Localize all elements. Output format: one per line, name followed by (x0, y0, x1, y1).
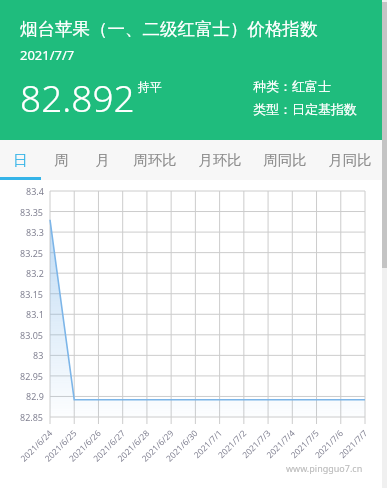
staticText: 2021/7/7 (20, 46, 75, 64)
staticText: 月环比 (198, 151, 242, 169)
staticText: 月 (95, 151, 110, 169)
staticText: 种类：红富士 (253, 78, 331, 94)
button[interactable]: 日 (0, 140, 41, 180)
button[interactable]: 月环比 (187, 140, 252, 180)
button[interactable]: 月同比 (317, 140, 382, 180)
staticText: 周同比 (263, 151, 307, 169)
staticText: 日 (13, 151, 28, 169)
staticText: 烟台苹果（一、二级红富士）价格指数 (20, 18, 318, 40)
button[interactable]: 周同比 (252, 140, 317, 180)
staticText: 月同比 (328, 151, 372, 169)
button[interactable]: 月 (82, 140, 122, 180)
staticText: 周 (54, 151, 69, 169)
staticText: 周环比 (133, 151, 177, 169)
staticText: 持平 (138, 79, 162, 94)
button[interactable]: 周环比 (122, 140, 187, 180)
staticText: 82.892 (20, 72, 135, 122)
staticText: 类型：日定基指数 (253, 101, 357, 117)
button[interactable]: 周 (41, 140, 82, 180)
